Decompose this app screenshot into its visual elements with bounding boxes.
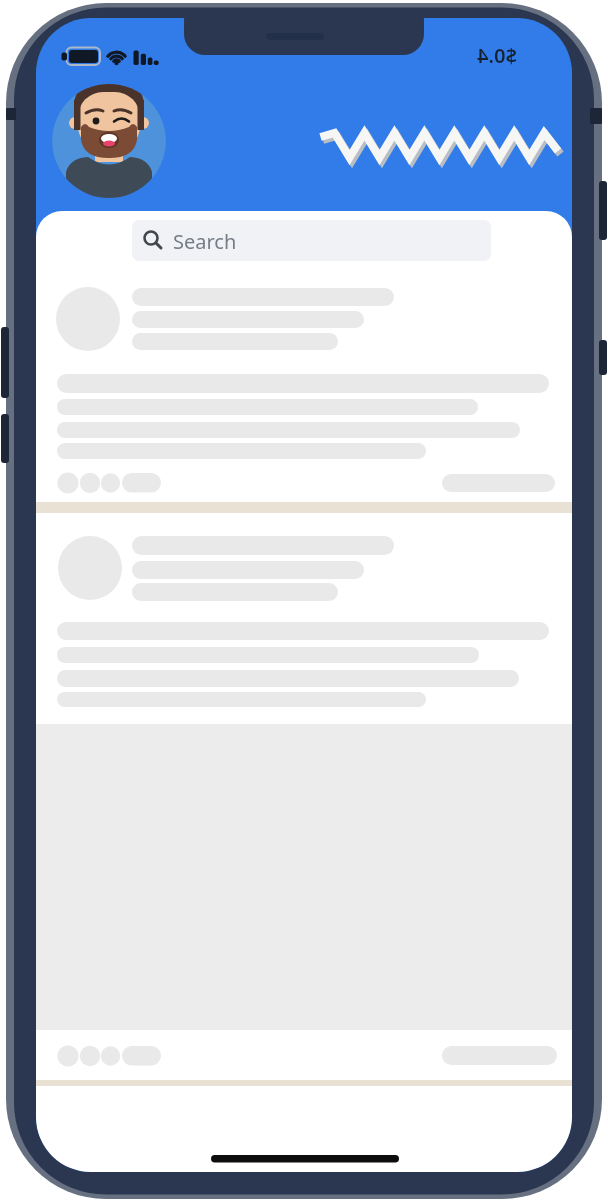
button[interactable]	[57, 1045, 162, 1067]
button[interactable]	[132, 220, 491, 261]
staticText: $0.4	[477, 42, 517, 69]
button[interactable]	[442, 473, 555, 493]
button[interactable]	[52, 84, 166, 198]
staticText: Search	[173, 228, 237, 255]
button[interactable]	[57, 472, 162, 494]
button[interactable]	[442, 1045, 557, 1066]
